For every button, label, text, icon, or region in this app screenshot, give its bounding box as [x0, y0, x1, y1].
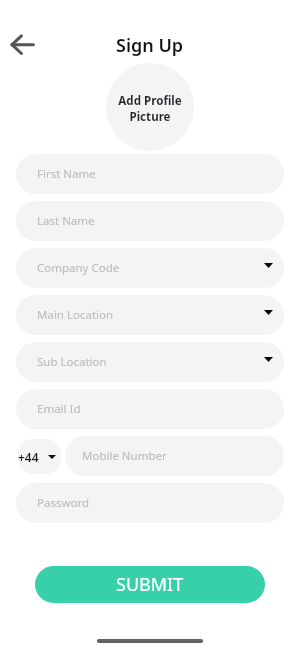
button[interactable]: Back — [0, 26, 46, 62]
button[interactable]: Sub Location — [16, 342, 284, 382]
button[interactable]: Last Name — [16, 201, 284, 241]
button[interactable]: Password — [16, 483, 284, 523]
staticText: Sub Location — [37, 354, 107, 370]
staticText: Password — [37, 495, 90, 511]
staticText: Company Code — [37, 260, 120, 276]
staticText: Mobile Number — [82, 448, 167, 464]
button[interactable]: Company Code — [16, 248, 284, 288]
staticText: Email Id — [37, 401, 81, 417]
staticText: Sign Up — [116, 33, 184, 58]
staticText: Main Location — [37, 307, 114, 323]
button[interactable]: Email Id — [16, 389, 284, 429]
staticText: Last Name — [37, 213, 95, 229]
button[interactable]: Mobile Number — [65, 436, 284, 476]
button[interactable]: Add Profile Picture — [106, 63, 194, 151]
button[interactable]: First Name — [16, 154, 284, 194]
button[interactable]: Main Location — [16, 295, 284, 335]
staticText: +44 — [18, 449, 39, 465]
staticText: SUBMIT — [116, 572, 184, 597]
button[interactable]: Country code +44 — [18, 439, 61, 474]
staticText: First Name — [37, 166, 96, 182]
button[interactable]: SUBMIT — [35, 566, 265, 603]
staticText: Add Profile Picture — [118, 93, 182, 124]
